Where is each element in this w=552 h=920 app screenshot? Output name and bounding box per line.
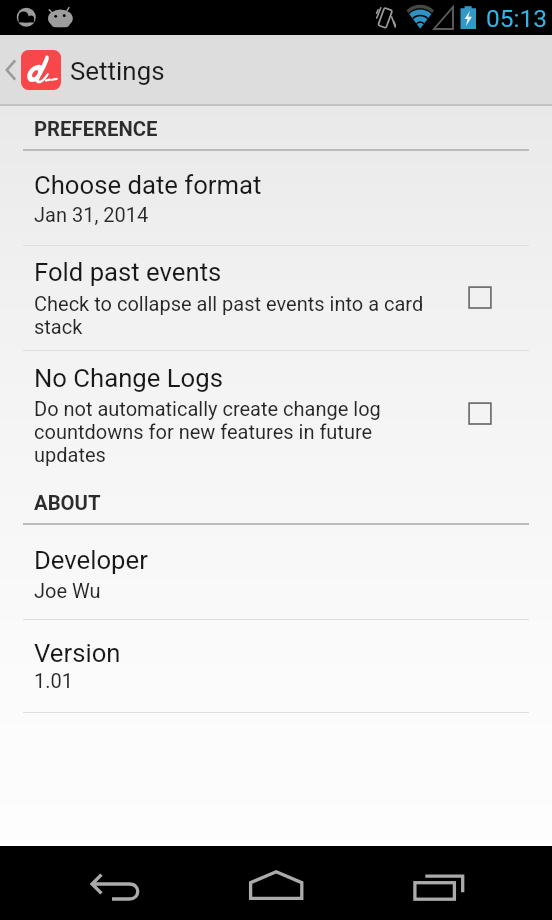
staticText: Choose date format bbox=[34, 170, 434, 200]
staticText: No Change Logs bbox=[34, 363, 434, 393]
button[interactable] bbox=[0, 526, 552, 619]
button[interactable]: Navigate up bbox=[0, 35, 170, 105]
staticText: Fold past events bbox=[34, 257, 434, 287]
button[interactable] bbox=[0, 246, 552, 350]
staticText: 05:13 bbox=[486, 4, 548, 33]
button[interactable] bbox=[0, 351, 552, 477]
staticText: PREFERENCE bbox=[34, 117, 158, 141]
staticText: Version bbox=[34, 638, 434, 668]
button[interactable]: Recent apps bbox=[365, 846, 525, 920]
button[interactable] bbox=[0, 620, 552, 712]
staticText: Joe Wu bbox=[34, 580, 434, 603]
staticText: Developer bbox=[34, 545, 434, 575]
button[interactable]: Back bbox=[30, 846, 210, 920]
staticText: Check to collapse all past events into a… bbox=[34, 293, 434, 339]
staticText: Do not automatically create change log c… bbox=[34, 398, 434, 467]
staticText: Settings bbox=[70, 56, 165, 86]
staticText: 1.01 bbox=[34, 670, 434, 693]
button[interactable]: Home bbox=[215, 846, 345, 920]
button[interactable] bbox=[0, 151, 552, 245]
button[interactable]: Fold past events bbox=[466, 284, 494, 311]
staticText: ABOUT bbox=[34, 491, 101, 515]
button[interactable]: No Change Logs bbox=[466, 400, 494, 427]
staticText: Jan 31, 2014 bbox=[34, 204, 434, 227]
